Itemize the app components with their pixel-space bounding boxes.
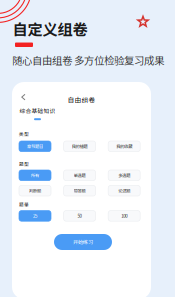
staticText: 自定义组卷 [12, 17, 87, 39]
staticText: 所有 [31, 172, 39, 178]
staticText: 综合基础知识 [19, 106, 55, 115]
staticText: 我的收藏 [116, 143, 132, 149]
button[interactable]: Back [16, 90, 30, 104]
button[interactable]: 我的收藏 [108, 141, 140, 152]
button[interactable]: 开始练习 [54, 234, 112, 250]
staticText: 章节题目 [27, 143, 43, 149]
staticText: 25 [33, 213, 37, 219]
staticText: 类型 [19, 130, 29, 137]
button[interactable]: 单选题 [64, 170, 96, 181]
staticText: 随心自由组卷 多方位检验复习成果 [12, 52, 164, 68]
button[interactable]: 50 [64, 211, 96, 221]
button[interactable]: 判断题 [19, 185, 51, 196]
button[interactable]: 简答题 [64, 185, 96, 196]
staticText: 简答题 [74, 187, 86, 194]
button[interactable]: 25 [19, 211, 51, 221]
staticText: 题量 [19, 201, 29, 208]
staticText: 100 [121, 213, 127, 219]
staticText: 50 [78, 213, 82, 219]
staticText: 开始练习 [73, 238, 93, 246]
button[interactable]: 多选题 [108, 170, 140, 181]
button[interactable]: 100 [108, 211, 140, 221]
staticText: 论述题 [118, 187, 130, 194]
staticText: 自由组卷 [67, 95, 95, 105]
button[interactable]: 所有 [19, 170, 51, 181]
staticText: 多选题 [118, 172, 130, 178]
staticText: 判断题 [29, 187, 41, 194]
staticText: 单选题 [74, 172, 86, 178]
staticText: 我的错题 [72, 143, 88, 149]
button[interactable]: 我的错题 [64, 141, 96, 152]
button[interactable]: 综合基础知识 [19, 106, 55, 120]
button[interactable]: 论述题 [108, 185, 140, 196]
button[interactable]: 章节题目 [19, 141, 51, 152]
staticText: 题型 [19, 160, 29, 167]
